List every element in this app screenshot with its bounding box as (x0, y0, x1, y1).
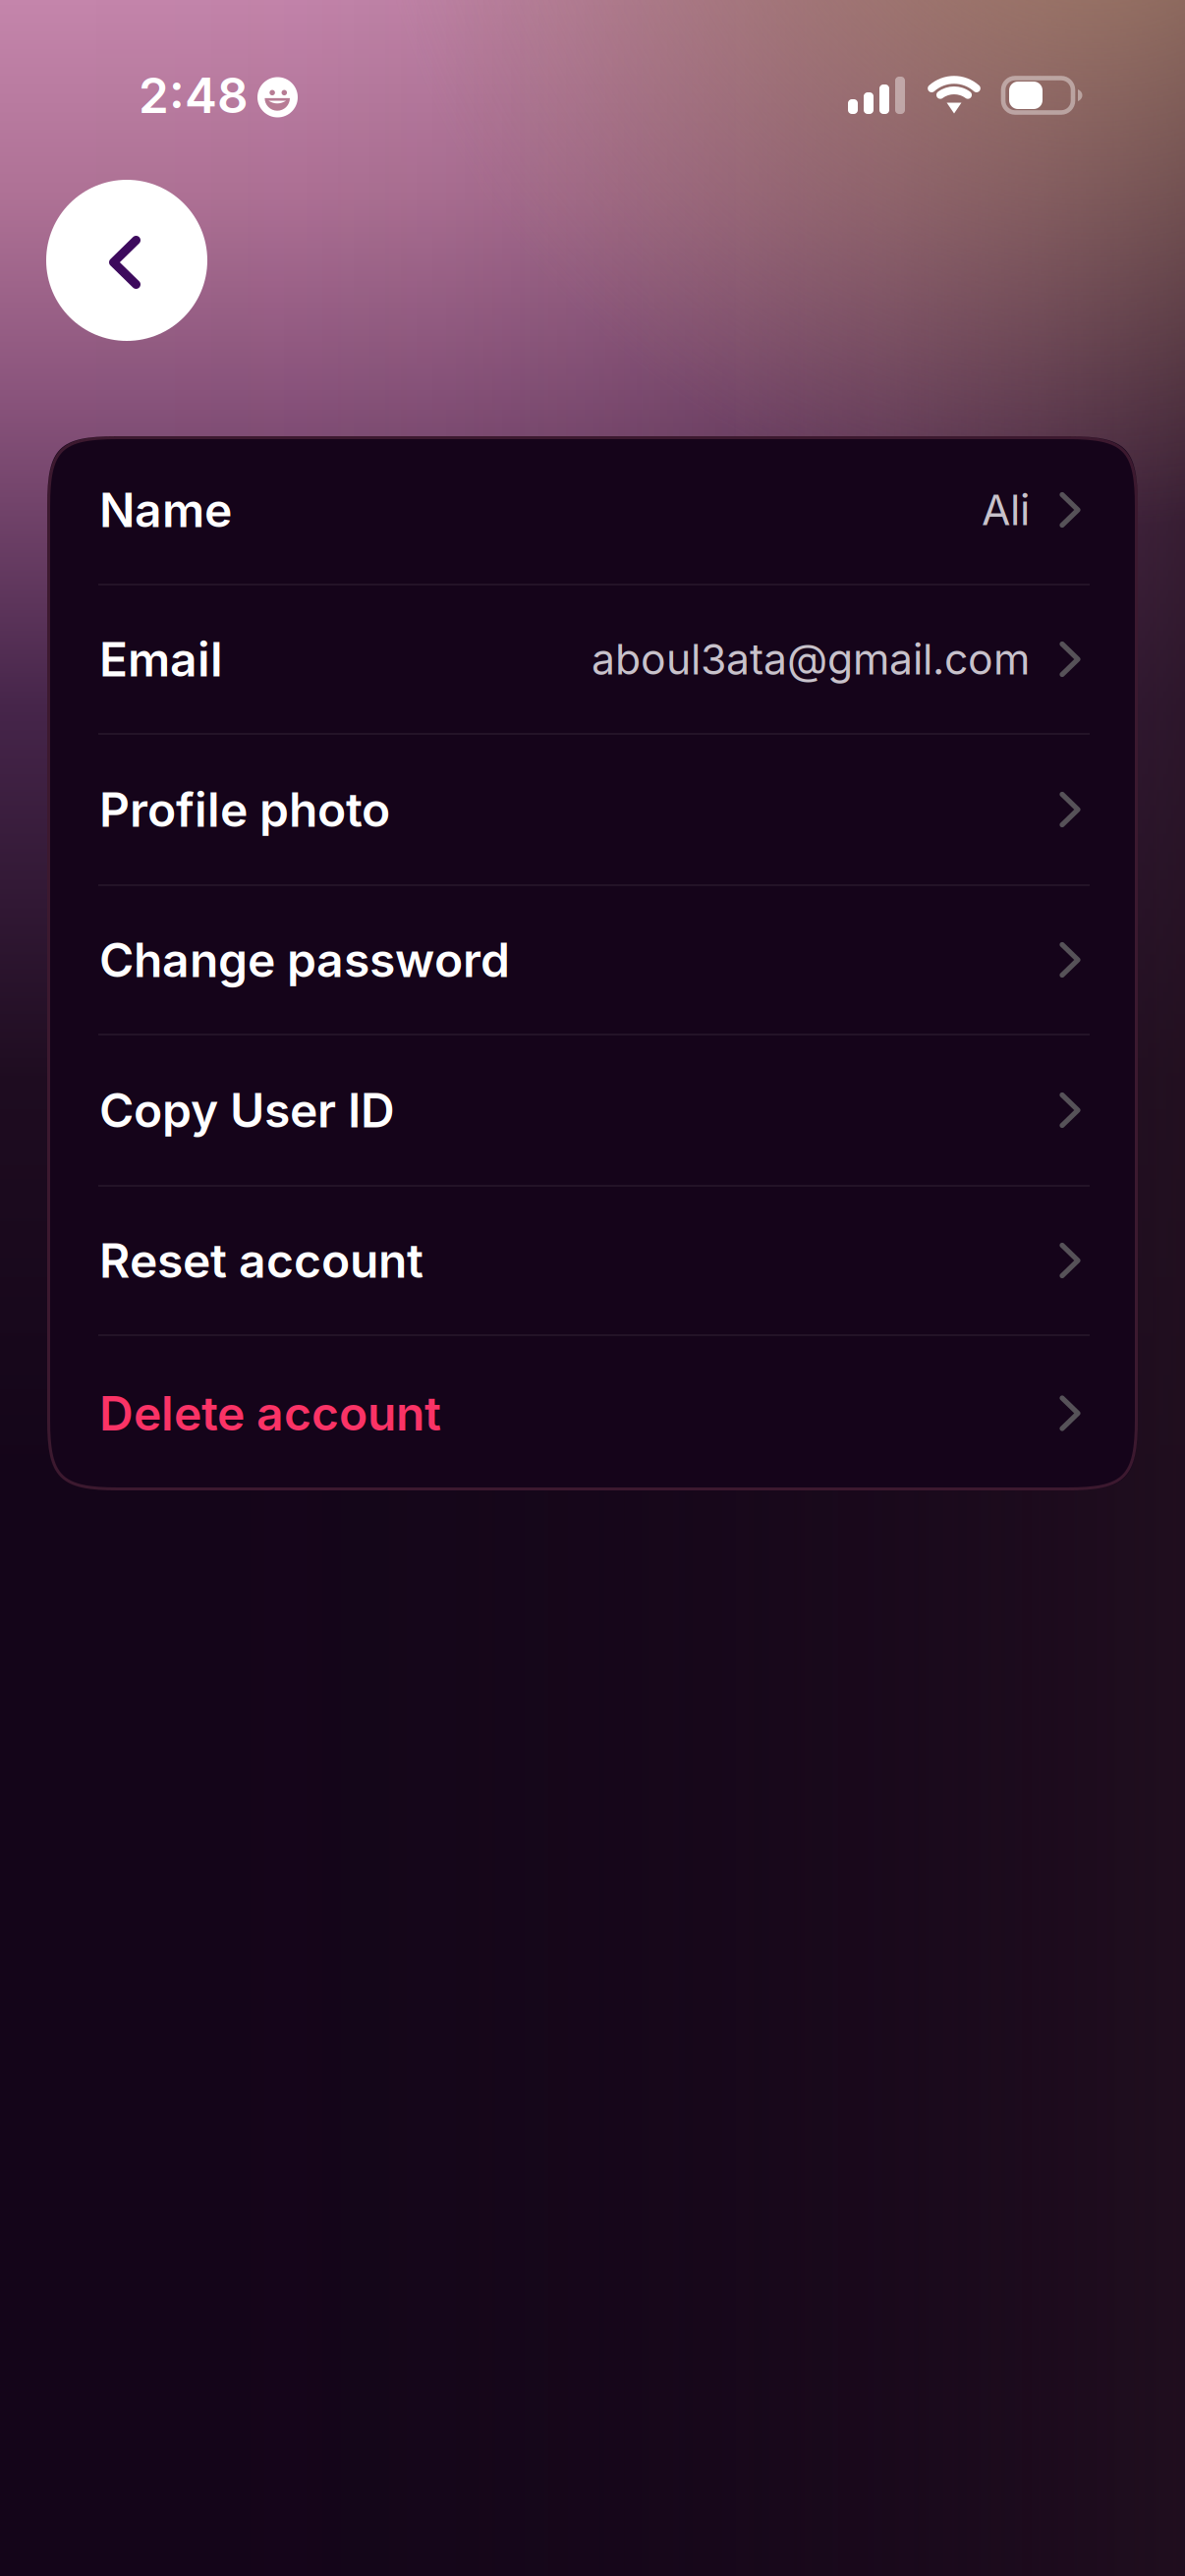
button[interactable]: Change password (47, 886, 1138, 1034)
staticText: Ali (982, 485, 1030, 535)
staticText: Delete account (99, 1385, 441, 1442)
staticText: Change password (99, 931, 510, 988)
staticText: 2:48 (139, 66, 249, 125)
button[interactable]: Profile photo (47, 735, 1138, 884)
button[interactable]: Copy User ID (47, 1036, 1138, 1185)
staticText: Reset account (99, 1232, 423, 1289)
staticText: aboul3ata@gmail.com (592, 634, 1030, 685)
button[interactable]: Delete account (47, 1336, 1138, 1490)
staticText: Profile photo (99, 781, 390, 838)
staticText: Copy User ID (99, 1082, 395, 1139)
staticText: Name (99, 481, 232, 538)
staticText: Email (99, 631, 223, 688)
button[interactable]: Email (47, 586, 1138, 733)
button[interactable]: Reset account (47, 1187, 1138, 1334)
button[interactable]: Name (47, 436, 1138, 584)
button[interactable]: Back (46, 180, 207, 341)
